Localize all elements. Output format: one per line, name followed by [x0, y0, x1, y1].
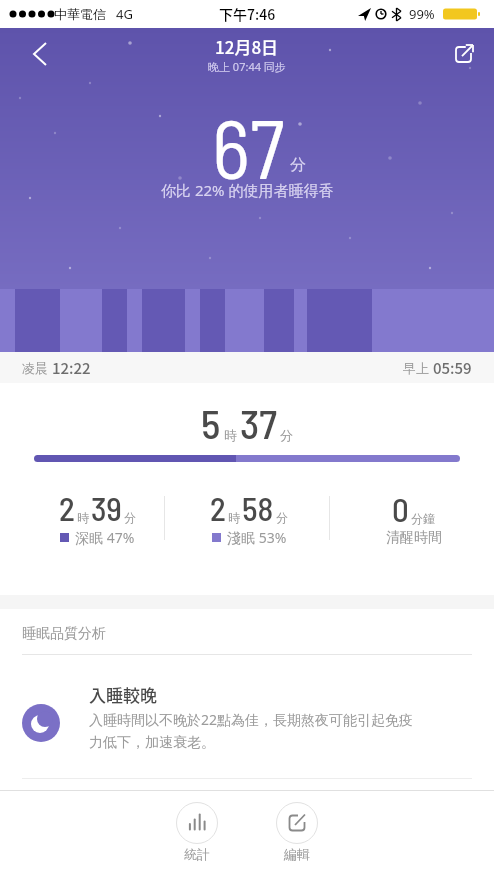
staticText: 統計 [184, 846, 210, 862]
staticText: 12月8日 [215, 34, 279, 59]
staticText: 12:22 [52, 357, 91, 379]
button[interactable] [20, 34, 60, 74]
staticText: 分 [124, 510, 136, 525]
button[interactable] [445, 36, 481, 72]
staticText: 下午7:46 [219, 4, 276, 24]
button[interactable]: 編輯 [276, 802, 318, 862]
staticText: 67 [212, 97, 285, 195]
staticText: 分鐘 [411, 511, 435, 526]
staticText: 入睡時間以不晚於22點為佳，長期熬夜可能引起免疫 力低下，加速衰老。 [89, 710, 414, 752]
button[interactable]: 統計 [176, 802, 218, 862]
staticText: 時 [224, 427, 237, 443]
staticText: 2 [210, 488, 226, 528]
staticText: 深眠 47% [75, 528, 135, 547]
staticText: 你比 22% 的使用者睡得香 [161, 180, 334, 200]
staticText: 中華電信 [54, 6, 106, 22]
staticText: 4G [116, 5, 133, 23]
staticText: 58 [242, 488, 274, 528]
staticText: 時 [228, 510, 240, 525]
staticText: 分 [290, 155, 306, 175]
staticText: 39 [91, 488, 122, 528]
staticText: 入睡較晚 [89, 682, 157, 707]
staticText: 淺眠 53% [227, 528, 287, 547]
staticText: 睡眠品質分析 [22, 625, 106, 643]
staticText: 晚上 07:44 同步 [208, 59, 286, 74]
staticText: 清醒時間 [386, 529, 442, 547]
staticText: 0 [392, 489, 409, 529]
staticText: 2 [59, 488, 75, 528]
staticText: 凌晨 [22, 359, 52, 377]
staticText: 時 [77, 510, 89, 525]
staticText: 早上 [403, 359, 433, 377]
staticText: 分 [280, 427, 293, 443]
staticText: 37 [240, 398, 277, 447]
staticText: 99% [409, 5, 435, 23]
staticText: 5 [201, 398, 221, 447]
staticText: 05:59 [433, 357, 472, 379]
staticText: 編輯 [284, 846, 310, 862]
staticText: 分 [276, 510, 288, 525]
